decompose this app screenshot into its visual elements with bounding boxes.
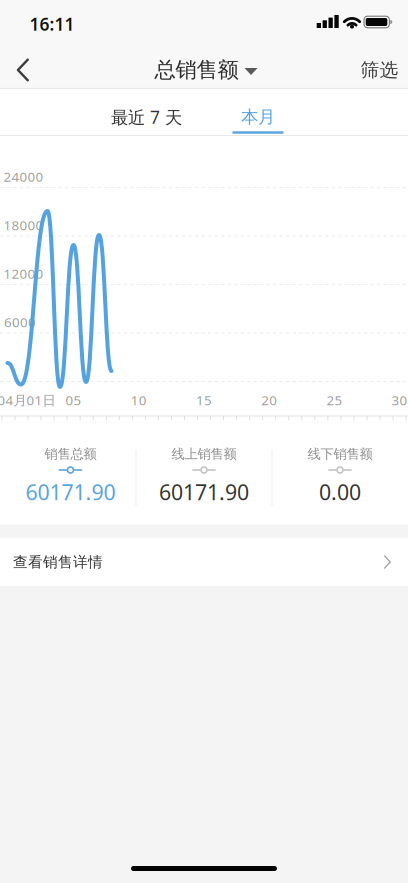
staticText: 销售总额 — [44, 446, 96, 462]
staticText: 60171.90 — [159, 478, 249, 506]
button[interactable]: 线下销售额 — [274, 444, 406, 508]
staticText: 16:11 — [29, 12, 74, 35]
staticText: 18000 — [3, 216, 43, 234]
staticText: 本月 — [241, 106, 275, 128]
staticText: 总销售额 — [154, 57, 238, 83]
staticText: 24000 — [3, 168, 43, 185]
staticText: 最近 7 天 — [111, 105, 182, 128]
staticText: 30 — [392, 391, 408, 409]
button[interactable]: Back — [17, 58, 29, 81]
staticText: 线上销售额 — [171, 446, 236, 462]
staticText: 12000 — [3, 265, 43, 282]
staticText: 10 — [131, 391, 147, 409]
staticText: 05 — [66, 391, 82, 409]
staticText: 0.00 — [319, 478, 361, 506]
button[interactable]: 筛选 — [360, 58, 398, 81]
button[interactable]: 最近 7 天 — [81, 94, 211, 140]
staticText: 线下销售额 — [307, 446, 372, 462]
button[interactable]: 线上销售额 — [138, 444, 270, 508]
staticText: 15 — [196, 391, 212, 409]
staticText: 20 — [261, 391, 277, 409]
staticText: 04月01日 — [0, 391, 55, 409]
button[interactable]: 查看销售详情 — [0, 538, 408, 586]
staticText: 25 — [326, 391, 342, 409]
staticText: 60171.90 — [25, 478, 115, 506]
staticText: 筛选 — [360, 58, 398, 81]
button[interactable]: 销售总额 — [4, 444, 136, 508]
button[interactable]: 本月 — [203, 94, 313, 140]
staticText: 查看销售详情 — [13, 553, 103, 571]
staticText: 6000 — [4, 313, 36, 331]
button[interactable]: 总销售额 切换 — [154, 57, 257, 83]
